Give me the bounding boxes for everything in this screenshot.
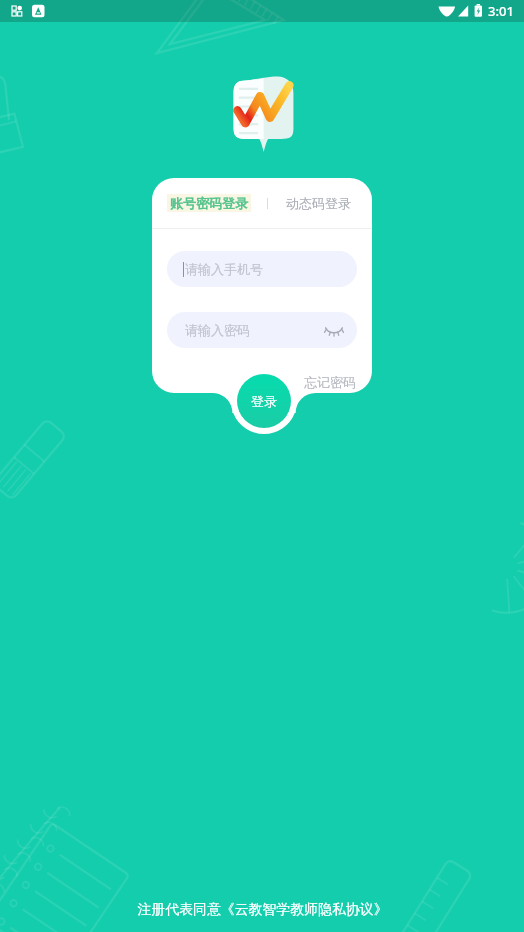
button[interactable]: 动态码登录	[286, 195, 351, 211]
button[interactable]: 账号密码登录	[167, 194, 251, 212]
staticText: 请输入密码	[185, 322, 250, 338]
staticText: 登录	[251, 393, 277, 409]
staticText: 账号密码登录	[170, 195, 248, 211]
staticText: 忘记密码	[304, 374, 356, 390]
staticText: 请输入手机号	[185, 261, 263, 277]
button[interactable]: 请输入密码	[167, 312, 357, 348]
button[interactable]: 登录	[237, 374, 291, 428]
button[interactable]: 注册代表同意《云教智学教师隐私协议》	[137, 901, 388, 919]
staticText: 3:01	[488, 2, 514, 20]
staticText: 动态码登录	[286, 195, 351, 211]
button[interactable]: 忘记密码	[304, 374, 356, 390]
staticText: 注册代表同意《云教智学教师隐私协议》	[137, 901, 388, 919]
button[interactable]: 请输入手机号	[167, 251, 357, 287]
button[interactable]: Show password	[323, 319, 345, 341]
